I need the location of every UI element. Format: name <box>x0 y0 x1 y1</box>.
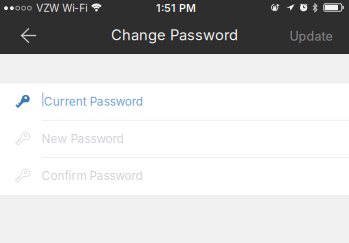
staticText: Change Password <box>111 26 238 44</box>
staticText: Confirm Password <box>41 169 142 183</box>
button[interactable]: Back <box>0 17 61 54</box>
button[interactable]: New Password <box>0 121 349 158</box>
staticText: New Password <box>41 132 123 146</box>
staticText: 1:51 PM <box>156 2 196 15</box>
staticText: VZW Wi-Fi <box>36 2 87 14</box>
button[interactable]: Confirm Password <box>0 158 349 195</box>
staticText: Update <box>289 29 332 44</box>
button[interactable]: Update <box>289 17 349 54</box>
staticText: Current Password <box>44 94 143 109</box>
button[interactable]: Current Password <box>0 84 349 121</box>
